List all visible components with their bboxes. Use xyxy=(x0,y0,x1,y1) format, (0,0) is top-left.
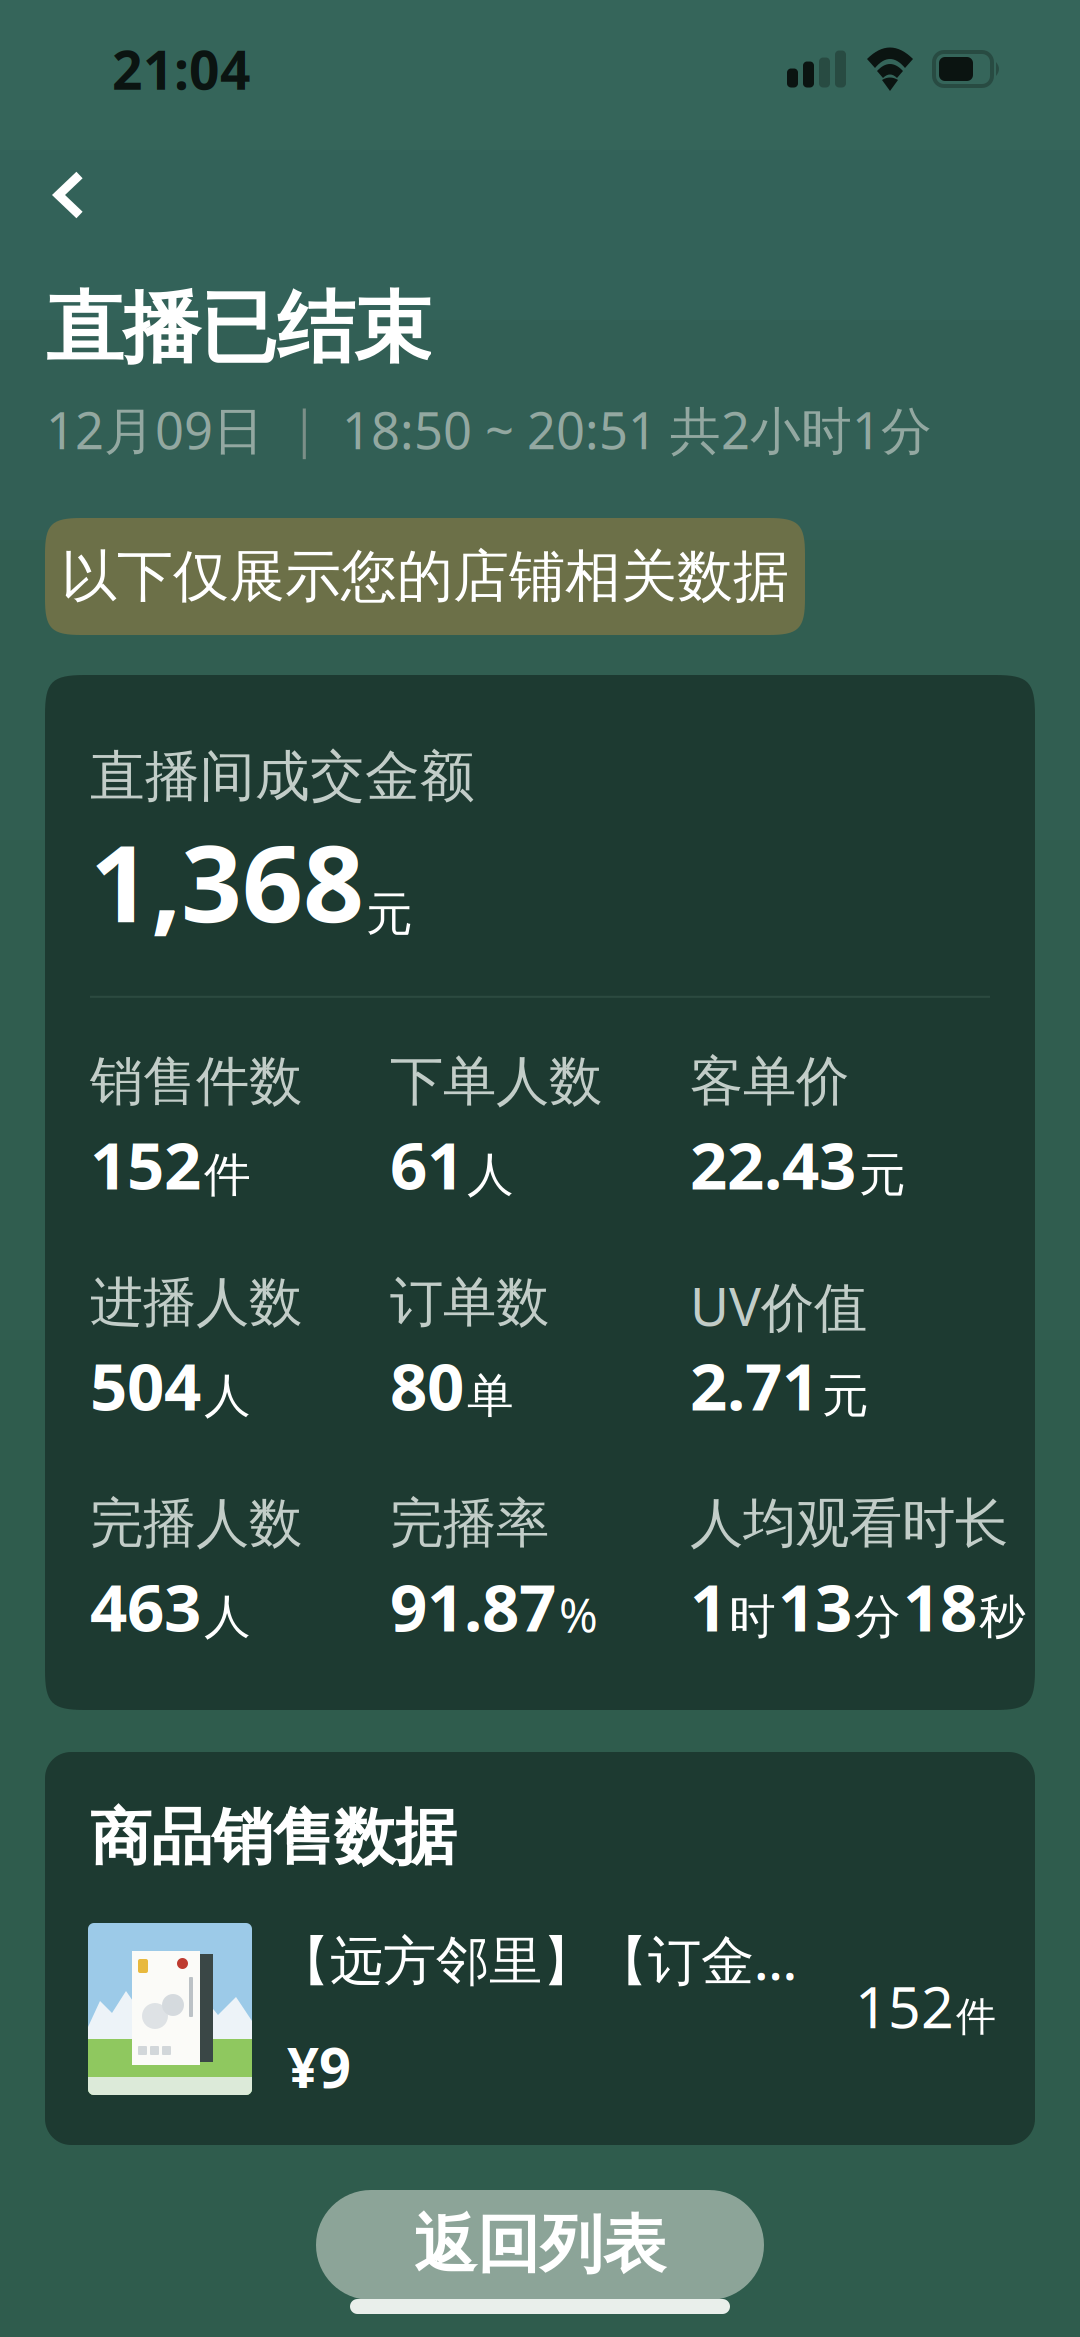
staticText: ｜ xyxy=(279,398,329,461)
button[interactable]: 返回列表 xyxy=(316,2190,764,2300)
staticText: 商品销售数据 xyxy=(90,1800,456,1875)
staticText: 463 xyxy=(90,1563,201,1650)
staticText: 以下仅展示您的店铺相关数据 xyxy=(61,542,789,611)
staticText: 直播已结束 xyxy=(46,281,431,376)
staticText: 元 xyxy=(366,885,413,943)
button[interactable]: Back xyxy=(23,147,115,243)
staticText: 时 xyxy=(729,1588,776,1645)
staticText: 元 xyxy=(822,1367,869,1424)
staticText: 单 xyxy=(467,1367,514,1424)
staticText: 返回列表 xyxy=(414,2206,666,2283)
staticText: % xyxy=(559,1584,598,1646)
staticText: 完播人数 xyxy=(90,1491,302,1556)
staticText: 件 xyxy=(956,1992,996,2041)
staticText: 1 xyxy=(690,1563,727,1650)
staticText: 504 xyxy=(90,1342,201,1429)
staticText: 客单价 xyxy=(690,1049,849,1114)
staticText: UV价值 xyxy=(690,1270,867,1341)
staticText: 订单数 xyxy=(390,1270,549,1335)
button[interactable]: 【远方邻里】【订金… xyxy=(88,1918,995,2094)
staticText: 分 xyxy=(854,1588,901,1645)
staticText: 【远方邻里】【订金… xyxy=(277,1924,797,1995)
staticText: 销售件数 xyxy=(90,1049,302,1114)
staticText: 22.43 xyxy=(690,1121,856,1208)
staticText: 61 xyxy=(390,1121,464,1208)
staticText: 80 xyxy=(390,1342,464,1429)
staticText: 人均观看时长 xyxy=(690,1491,1008,1556)
staticText: 完播率 xyxy=(390,1491,549,1556)
staticText: 人 xyxy=(467,1146,514,1203)
staticText: 秒 xyxy=(979,1588,1026,1645)
staticText: 91.87 xyxy=(390,1563,556,1650)
staticText: 1,368 xyxy=(90,810,364,952)
staticText: 13 xyxy=(778,1563,852,1650)
staticText: 152 xyxy=(855,1968,954,2044)
staticText: 直播间成交金额 xyxy=(90,743,475,810)
staticText: 人 xyxy=(204,1367,251,1424)
staticText: 21:04 xyxy=(112,34,251,104)
staticText: 进播人数 xyxy=(90,1270,302,1335)
staticText: ¥9 xyxy=(287,2029,351,2103)
staticText: 元 xyxy=(859,1146,906,1203)
staticText: 件 xyxy=(204,1146,251,1203)
staticText: 18:50 ~ 20:51 共2小时1分 xyxy=(329,396,932,463)
staticText: 18 xyxy=(903,1563,977,1650)
staticText: 152 xyxy=(90,1121,201,1208)
staticText: 12月09日 xyxy=(46,396,279,463)
staticText: 人 xyxy=(204,1588,251,1645)
staticText: 2.71 xyxy=(690,1342,819,1429)
staticText: 下单人数 xyxy=(390,1049,602,1114)
